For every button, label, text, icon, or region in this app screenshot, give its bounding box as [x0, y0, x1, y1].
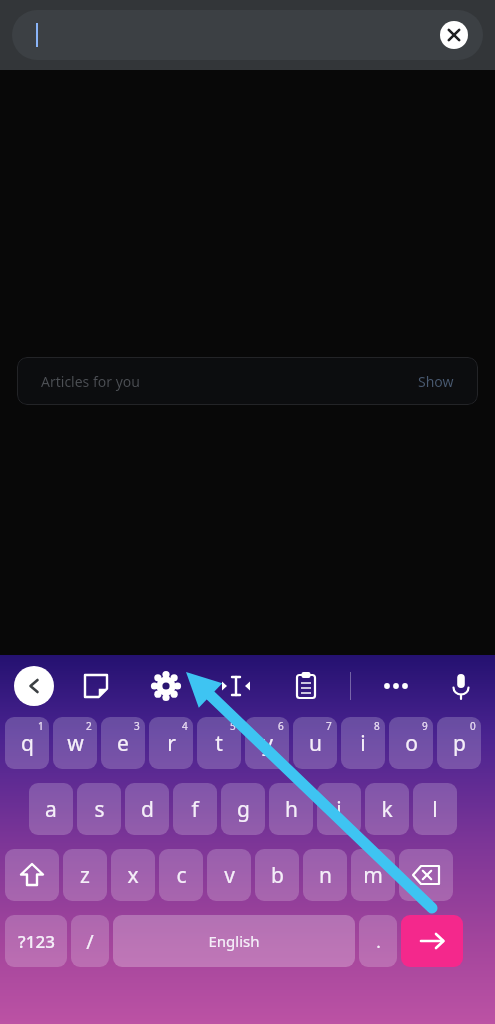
button[interactable]: Settings	[146, 666, 186, 706]
staticText: f	[191, 795, 199, 824]
button[interactable]: n	[303, 849, 347, 901]
button[interactable]: a	[29, 783, 73, 835]
staticText: y	[262, 729, 273, 758]
staticText: d	[141, 795, 154, 824]
staticText: 7	[326, 719, 332, 733]
staticText: .	[376, 930, 381, 953]
staticText: 5	[230, 719, 236, 733]
staticText: m	[363, 861, 383, 890]
staticText: English	[208, 931, 260, 951]
staticText: z	[80, 861, 90, 890]
staticText: 1	[38, 719, 44, 733]
button[interactable]: r	[149, 717, 193, 769]
button[interactable]: v	[207, 849, 251, 901]
staticText: l	[432, 795, 438, 824]
button[interactable]: p	[437, 717, 481, 769]
staticText: 4	[182, 719, 188, 733]
button[interactable]: More options	[376, 666, 416, 706]
button[interactable]: z	[63, 849, 107, 901]
staticText: i	[360, 729, 366, 758]
button[interactable]: x	[111, 849, 155, 901]
button[interactable]: Enter	[401, 915, 463, 967]
button[interactable]: i	[341, 717, 385, 769]
staticText: c	[176, 861, 187, 890]
button[interactable]: Stickers	[76, 666, 116, 706]
button[interactable]: Articles for you	[17, 357, 478, 405]
staticText: 2	[86, 719, 92, 733]
staticText: /	[86, 928, 94, 955]
staticText: p	[453, 729, 466, 758]
button[interactable]: e	[101, 717, 145, 769]
staticText: b	[271, 861, 284, 890]
staticText: t	[215, 729, 223, 758]
button[interactable]: q	[5, 717, 49, 769]
button[interactable]: c	[159, 849, 203, 901]
button[interactable]: s	[77, 783, 121, 835]
button[interactable]: t	[197, 717, 241, 769]
staticText: a	[45, 795, 57, 824]
staticText: u	[309, 729, 322, 758]
button[interactable]: j	[317, 783, 361, 835]
staticText: 6	[278, 719, 284, 733]
staticText: 8	[374, 719, 380, 733]
button[interactable]: English	[113, 915, 355, 967]
button[interactable]: Clipboard	[286, 666, 326, 706]
button[interactable]: /	[71, 915, 109, 967]
button[interactable]: u	[293, 717, 337, 769]
staticText: Show	[418, 372, 454, 391]
staticText: ?123	[18, 930, 55, 953]
staticText: o	[405, 729, 418, 758]
button[interactable]: d	[125, 783, 169, 835]
button[interactable]: m	[351, 849, 395, 901]
staticText: 9	[422, 719, 428, 733]
button[interactable]: h	[269, 783, 313, 835]
staticText: 0	[470, 719, 476, 733]
staticText: v	[224, 861, 235, 890]
staticText: e	[117, 729, 129, 758]
button[interactable]: o	[389, 717, 433, 769]
button[interactable]: g	[221, 783, 265, 835]
staticText: w	[67, 729, 84, 758]
staticText: q	[21, 729, 34, 758]
button[interactable]: Voice input	[441, 666, 481, 706]
button[interactable]: Backspace	[399, 849, 453, 901]
button[interactable]: k	[365, 783, 409, 835]
staticText: 3	[134, 719, 140, 733]
button[interactable]: w	[53, 717, 97, 769]
button[interactable]: Clear	[440, 21, 468, 49]
button[interactable]: Shift	[5, 849, 59, 901]
button[interactable]: ?123	[5, 915, 67, 967]
staticText: k	[381, 795, 393, 824]
button[interactable]: Back	[14, 666, 54, 706]
button[interactable]: .	[359, 915, 397, 967]
button[interactable]: Cursor control	[216, 666, 256, 706]
staticText: Articles for you	[41, 372, 140, 391]
button[interactable]: b	[255, 849, 299, 901]
staticText: r	[167, 729, 176, 758]
staticText: g	[237, 795, 250, 824]
button[interactable]: f	[173, 783, 217, 835]
staticText: s	[94, 795, 105, 824]
button[interactable]	[12, 10, 483, 60]
button[interactable]: y	[245, 717, 289, 769]
staticText: n	[319, 861, 332, 890]
staticText: j	[336, 795, 342, 824]
staticText: h	[285, 795, 298, 824]
button[interactable]: l	[413, 783, 457, 835]
staticText: x	[127, 861, 139, 890]
